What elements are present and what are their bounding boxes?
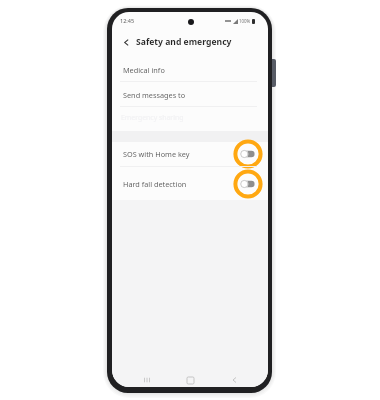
button[interactable]: Recent apps: [138, 371, 156, 387]
staticText: 12:45: [120, 17, 135, 24]
staticText: Hard fall detection: [123, 179, 187, 189]
button[interactable]: Send messages to: [112, 83, 268, 107]
staticText: Safety and emergency: [136, 36, 232, 48]
staticText: 100%: [239, 18, 251, 24]
button[interactable]: Home: [181, 371, 199, 387]
staticText: SOS with Home key: [123, 149, 190, 159]
staticText: Send messages to: [123, 90, 186, 100]
staticText: Emergency sharing: [121, 113, 184, 122]
button[interactable]: Back: [225, 371, 243, 387]
staticText: Medical info: [123, 65, 165, 75]
button[interactable]: Navigate up: [118, 34, 134, 50]
button[interactable]: SOS with Home key: [112, 139, 268, 169]
button[interactable]: Hard fall detection: [112, 169, 268, 199]
button[interactable]: Medical info: [112, 58, 268, 82]
